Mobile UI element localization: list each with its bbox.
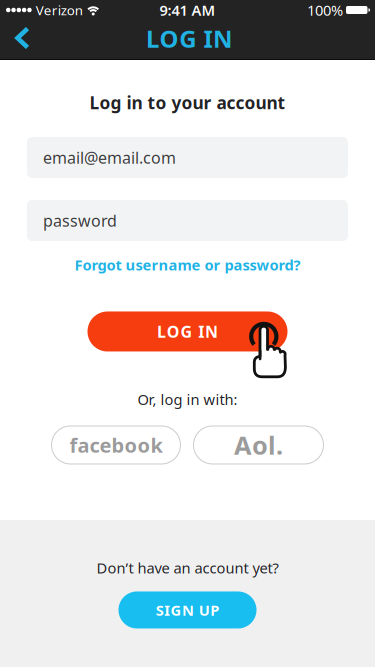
staticText: Aol. <box>234 428 283 462</box>
staticText: 9:41 AM <box>159 0 215 20</box>
staticText: Or, log in with: <box>137 389 237 409</box>
staticText: SIGN UP <box>156 600 219 620</box>
staticText: 100% <box>307 0 343 20</box>
button[interactable]: SIGN UP <box>118 591 256 628</box>
staticText: Don’t have an account yet? <box>96 558 278 577</box>
staticText: password <box>43 210 117 231</box>
staticText: email@email.com <box>43 147 176 168</box>
button[interactable]: facebook <box>51 426 180 464</box>
button[interactable]: LOG IN <box>87 311 287 351</box>
staticText: LOG IN <box>157 321 218 342</box>
button[interactable]: Forgot username or password? <box>74 255 300 274</box>
staticText: Verizon <box>36 1 83 19</box>
button[interactable]: email@email.com <box>27 137 348 178</box>
staticText: LOG IN <box>146 23 233 54</box>
button[interactable]: Aol. <box>193 426 323 464</box>
button[interactable]: Back <box>0 20 44 60</box>
staticText: Log in to your account <box>89 91 285 114</box>
button[interactable]: password <box>27 200 348 241</box>
staticText: facebook <box>69 432 162 458</box>
staticText: Forgot username or password? <box>74 255 300 274</box>
